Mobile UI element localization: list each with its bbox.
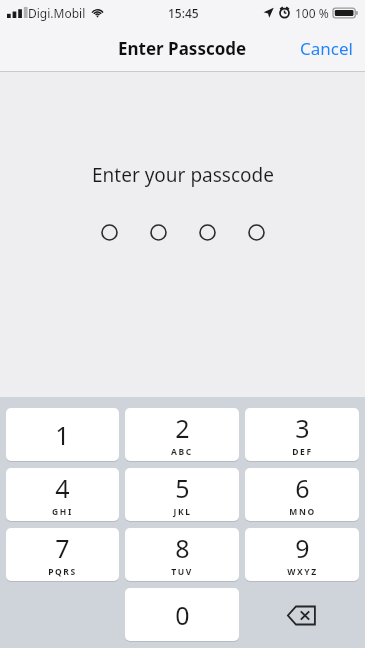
button[interactable]: 3 (245, 408, 359, 461)
button[interactable]: 6 (245, 468, 359, 521)
staticText: 15:45 (168, 5, 199, 21)
button[interactable]: 0 (125, 588, 239, 641)
staticText: 8 (175, 531, 190, 565)
staticText: Enter your passcode (92, 162, 274, 188)
staticText: 2 (175, 411, 190, 445)
button[interactable]: 2 (125, 408, 239, 461)
button[interactable]: 4 (6, 468, 119, 521)
staticText: 6 (295, 471, 310, 505)
staticText: DEF (292, 446, 313, 458)
staticText: Digi.Mobil (28, 5, 86, 21)
staticText: MNO (289, 506, 316, 518)
staticText: JKL (173, 506, 192, 518)
staticText: TUV (171, 566, 193, 578)
staticText: 7 (55, 531, 70, 565)
staticText: 100 % (295, 5, 329, 21)
staticText: 0 (175, 598, 190, 632)
staticText: 9 (295, 531, 310, 565)
staticText: 1 (55, 418, 70, 452)
button[interactable]: 7 (6, 528, 119, 581)
button[interactable]: Cancel (288, 29, 365, 68)
staticText: 5 (175, 471, 190, 505)
button[interactable]: 8 (125, 528, 239, 581)
button[interactable]: 1 (6, 408, 119, 461)
button[interactable]: 9 (245, 528, 359, 581)
staticText: GHI (52, 506, 73, 518)
staticText: 4 (55, 471, 70, 505)
staticText: PQRS (48, 566, 77, 578)
staticText: Cancel (300, 37, 353, 60)
staticText: WXYZ (287, 566, 318, 578)
staticText: Enter Passcode (118, 37, 247, 60)
staticText: 3 (295, 411, 310, 445)
button[interactable]: Delete (245, 588, 359, 642)
button[interactable]: 5 (125, 468, 239, 521)
staticText: ABC (171, 446, 193, 458)
